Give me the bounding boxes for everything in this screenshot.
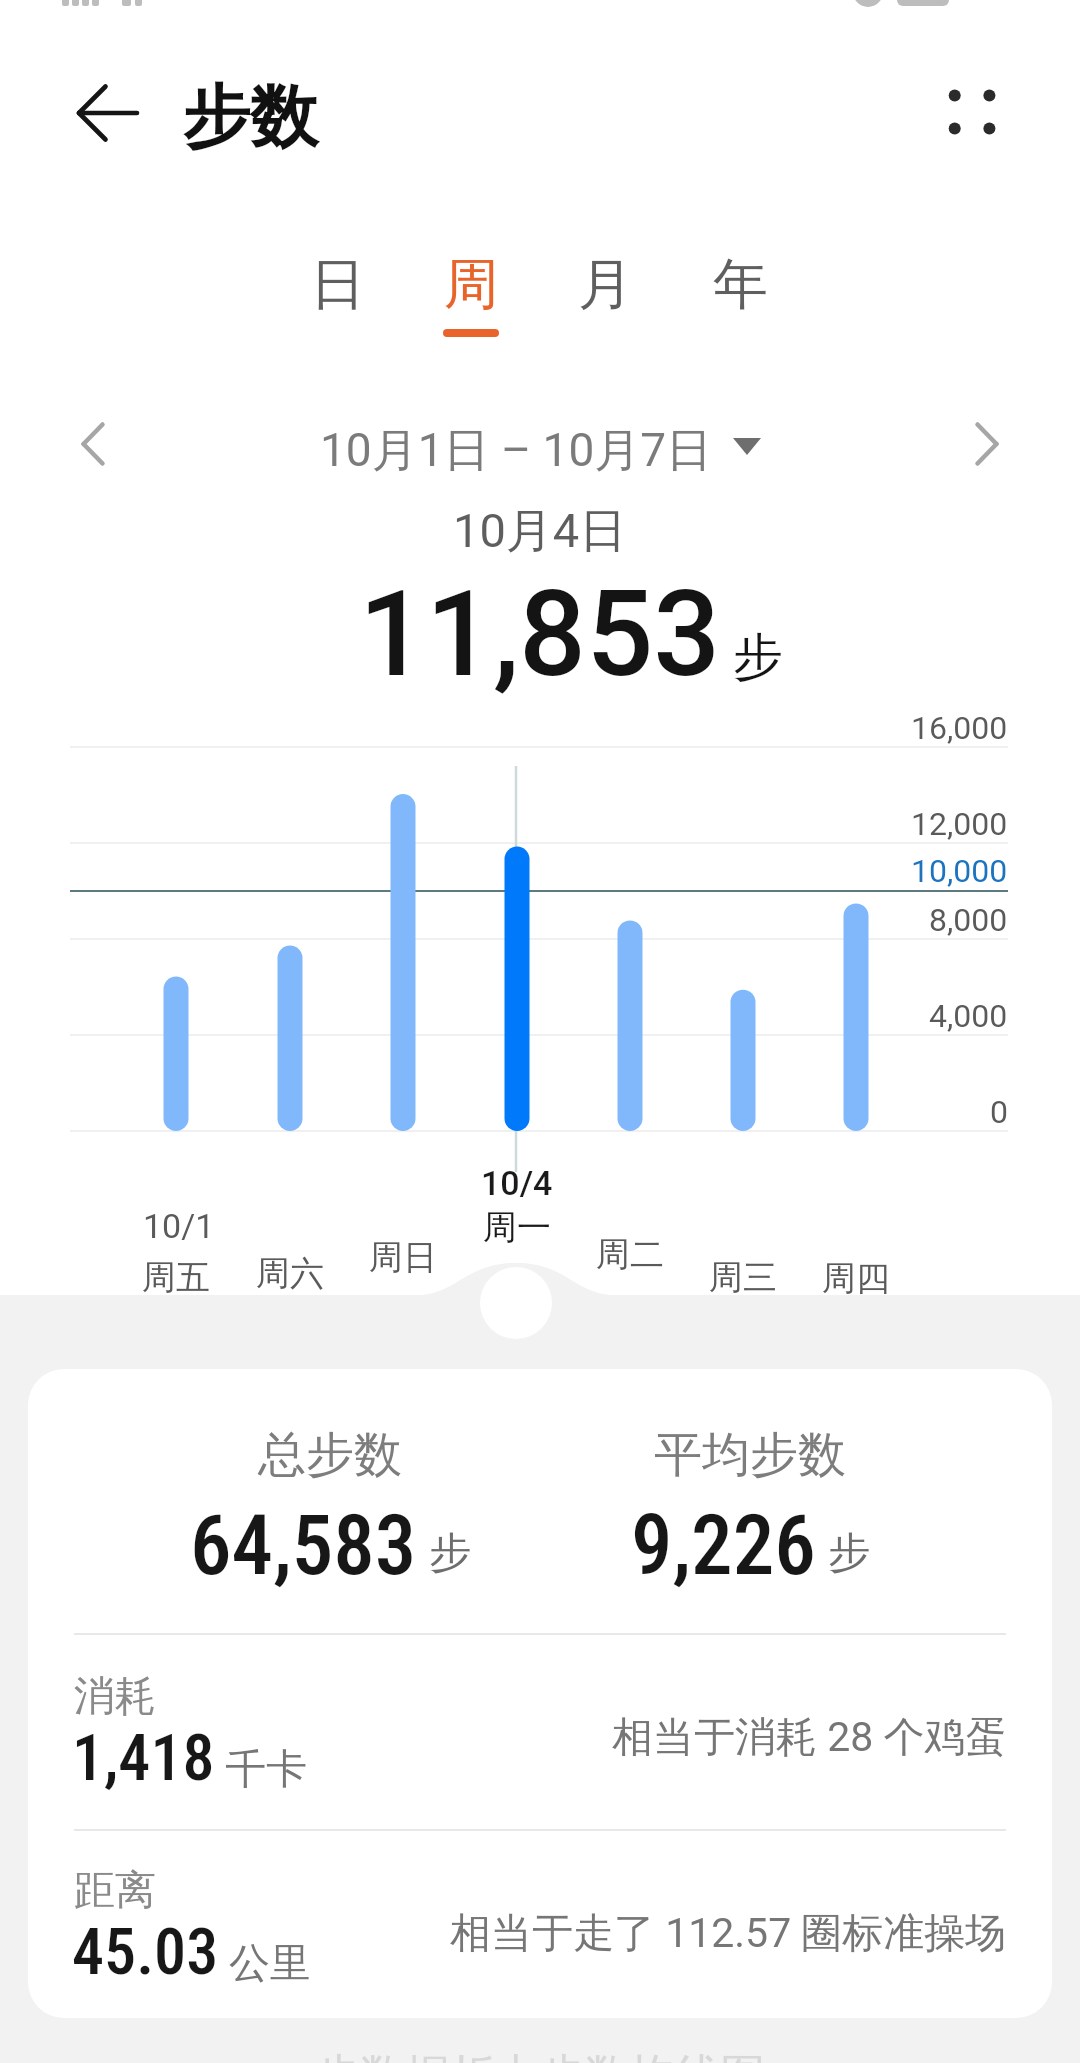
staticText: 相当于走了 112.57 圈标准操场 <box>450 1908 1007 1960</box>
staticText: 16,000 <box>911 709 1008 747</box>
staticText: 周 <box>444 250 499 319</box>
staticText: 周四 <box>822 1257 890 1300</box>
staticText: 年 <box>713 250 768 319</box>
staticText: 45.03 <box>72 1915 219 1990</box>
staticText: 11,853 <box>359 566 721 704</box>
staticText: 日 <box>310 250 365 319</box>
staticText: 1,418 <box>72 1721 215 1796</box>
staticText: 公里 <box>229 1938 311 1990</box>
staticText: 4,000 <box>929 997 1008 1035</box>
staticText: 步 <box>733 626 783 689</box>
staticText: 周五 <box>142 1256 210 1299</box>
staticText: 步数据折中步数均线图 <box>315 2048 765 2063</box>
staticText: 周二 <box>596 1233 664 1276</box>
staticText: 12,000 <box>911 805 1008 843</box>
button[interactable]: 月 <box>543 250 667 354</box>
button[interactable]: Back <box>59 65 155 161</box>
staticText: 步 <box>429 1527 471 1580</box>
staticText: 周一 <box>483 1206 551 1249</box>
staticText: 总步数 <box>258 1425 402 1485</box>
staticText: 8,000 <box>929 901 1008 939</box>
button[interactable]: 年 <box>678 250 802 354</box>
staticText: 10月4日 <box>453 502 627 561</box>
staticText: 平均步数 <box>654 1425 846 1485</box>
staticText: 距离 <box>74 1865 156 1917</box>
staticText: 周三 <box>709 1256 777 1299</box>
staticText: 消耗 <box>74 1671 156 1723</box>
button[interactable]: More options <box>924 62 1026 164</box>
staticText: 周日 <box>369 1236 437 1279</box>
staticText: 10,000 <box>911 852 1008 890</box>
staticText: 10月1日 – 10月7日 <box>320 422 713 480</box>
staticText: 步 <box>828 1527 870 1580</box>
staticText: 相当于消耗 28 个鸡蛋 <box>612 1712 1007 1764</box>
button[interactable]: Next week <box>947 404 1027 484</box>
staticText: 10/1 <box>143 1206 215 1246</box>
staticText: 0 <box>990 1093 1008 1131</box>
staticText: 千卡 <box>225 1744 307 1796</box>
staticText: 64,583 <box>190 1497 417 1594</box>
staticText: 周六 <box>256 1252 324 1295</box>
button[interactable]: 日 <box>275 250 399 354</box>
staticText: 10/4 <box>481 1163 553 1203</box>
button[interactable]: 周 <box>409 250 533 354</box>
staticText: 9,226 <box>631 1497 816 1594</box>
staticText: 月 <box>578 250 633 319</box>
button[interactable]: Previous week <box>53 404 133 484</box>
staticText: 步数 <box>182 75 318 161</box>
